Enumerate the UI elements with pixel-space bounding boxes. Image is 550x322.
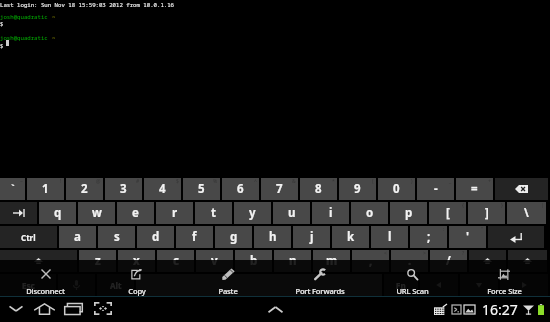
staticText: @ [96,178,101,185]
staticText: 1 [42,181,49,197]
button[interactable]: & [261,178,298,200]
staticText: ! [60,178,62,185]
button[interactable]: z [79,250,116,272]
button[interactable]: Alt [97,274,134,296]
button[interactable]: URL Scan [366,260,458,296]
staticText: p [405,205,413,221]
button[interactable]: " [449,226,486,248]
button[interactable] [508,250,547,272]
button[interactable]: ? [430,250,467,272]
button[interactable] [460,274,498,296]
button[interactable]: v [196,250,233,272]
button[interactable]: Force Size [458,260,550,296]
staticText: } [501,202,503,209]
button[interactable]: Port Forwards [274,260,366,296]
staticText: u [288,205,296,221]
button[interactable]: h [254,226,291,248]
button[interactable]: # [105,178,142,200]
staticText: v [211,253,218,269]
button[interactable]: Paste [182,260,274,296]
button[interactable]: q [39,202,76,224]
button[interactable] [58,274,95,296]
staticText: josh@quadratic [0,13,52,21]
button[interactable]: a [59,226,96,248]
button[interactable] [0,202,37,224]
button[interactable]: w [78,202,115,224]
staticText: a [74,229,81,245]
button[interactable]: : [410,226,447,248]
button[interactable]: n [274,250,311,272]
button[interactable]: g [215,226,252,248]
button[interactable]: j [293,226,330,248]
button[interactable]: s [98,226,135,248]
button[interactable]: _ [417,178,454,200]
staticText: d [152,229,160,245]
button[interactable]: $ [144,178,181,200]
button[interactable]: r [156,202,193,224]
button[interactable]: ^ [222,178,259,200]
button[interactable]: < [352,250,389,272]
button[interactable]: { [429,202,466,224]
button[interactable]: + [456,178,493,200]
button[interactable] [0,250,77,272]
button[interactable]: i [312,202,349,224]
staticText: ~ [52,13,56,21]
button[interactable]: Fn [384,274,418,296]
button[interactable]: l [371,226,408,248]
button[interactable] [136,274,382,296]
button[interactable]: d [137,226,174,248]
staticText: o [366,205,374,221]
staticText: Force Size [487,286,522,296]
button[interactable]: k [332,226,369,248]
staticText: ~ [52,34,56,42]
staticText: + [488,178,491,185]
staticText: . [408,253,412,269]
button[interactable]: e [117,202,154,224]
button[interactable]: * [300,178,337,200]
button[interactable]: o [351,202,388,224]
staticText: Disconnect [26,286,65,296]
button[interactable]: t [195,202,232,224]
button[interactable]: f [176,226,213,248]
button[interactable]: Home [29,296,59,321]
button[interactable] [500,274,548,296]
button[interactable]: u [273,202,310,224]
button[interactable] [488,226,544,248]
button[interactable]: % [183,178,220,200]
button[interactable]: Copy [91,260,182,296]
button[interactable]: ( [339,178,376,200]
button[interactable]: Recent apps [59,296,88,321]
button[interactable]: x [118,250,155,272]
button[interactable]: p [390,202,427,224]
staticText: Esc [22,280,35,291]
staticText: ? [462,250,465,257]
staticText: l [388,229,392,245]
button[interactable]: @ [66,178,103,200]
button[interactable]: Esc [0,274,56,296]
button[interactable]: c [157,250,194,272]
button[interactable]: ) [378,178,415,200]
button[interactable]: } [468,202,505,224]
button[interactable]: ! [27,178,64,200]
button[interactable]: Hide keyboard [2,296,29,321]
button[interactable]: Disconnect [0,260,91,296]
staticText: j [310,229,314,245]
button[interactable]: Expand [260,297,290,322]
button[interactable]: b [235,250,272,272]
button[interactable]: y [234,202,271,224]
button[interactable] [420,274,458,296]
button[interactable]: > [391,250,428,272]
button[interactable] [469,250,506,272]
staticText: m [326,253,338,269]
button[interactable]: Ctrl [0,226,57,248]
button[interactable]: m [313,250,350,272]
button[interactable] [495,178,548,200]
staticText: & [292,178,296,185]
staticText: josh@quadratic [0,34,52,42]
button[interactable]: Fullscreen [88,296,118,321]
button[interactable]: ~ [0,178,25,200]
staticText: s [114,229,120,245]
staticText: ( [372,178,374,185]
button[interactable]: | [507,202,546,224]
